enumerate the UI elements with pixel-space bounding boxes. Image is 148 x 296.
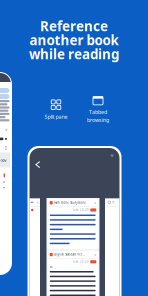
staticText: Tabbed — [89, 108, 107, 115]
button[interactable]: Split pane — [35, 96, 77, 124]
staticText: Faith Bible Study Bible — [54, 201, 86, 204]
button[interactable]: English Standard Ver... — [47, 251, 98, 296]
staticText: x — [36, 200, 38, 205]
button[interactable]: Close — [110, 154, 113, 157]
staticText: x — [94, 200, 96, 205]
button[interactable]: Faith Bible Study Bible — [47, 199, 98, 249]
staticText: browsing — [87, 116, 109, 124]
staticText: another book — [29, 31, 118, 49]
button[interactable]: Tabbed — [77, 96, 119, 124]
button[interactable]: Back — [33, 160, 42, 169]
staticText: Luke 24:49 — [73, 260, 89, 263]
staticText: Luke 24:49 — [73, 208, 89, 212]
staticText: English Standard Ver... — [54, 253, 85, 256]
staticText: while reading — [29, 45, 119, 63]
staticText: Se — [112, 200, 115, 204]
staticText: Split pane — [44, 113, 67, 120]
staticText: Copy — [0, 157, 6, 162]
staticText: Reference — [40, 17, 108, 35]
staticText: x — [94, 252, 96, 257]
staticText: x — [5, 126, 8, 133]
